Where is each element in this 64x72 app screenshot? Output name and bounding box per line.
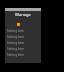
staticText: Setting item (7, 35, 25, 39)
staticText: Setting item (7, 53, 25, 57)
staticText: Setting item (7, 41, 25, 45)
staticText: Manage notifications (5, 12, 41, 17)
staticText: Setting item (7, 47, 25, 51)
staticText: Setting item (7, 29, 25, 33)
